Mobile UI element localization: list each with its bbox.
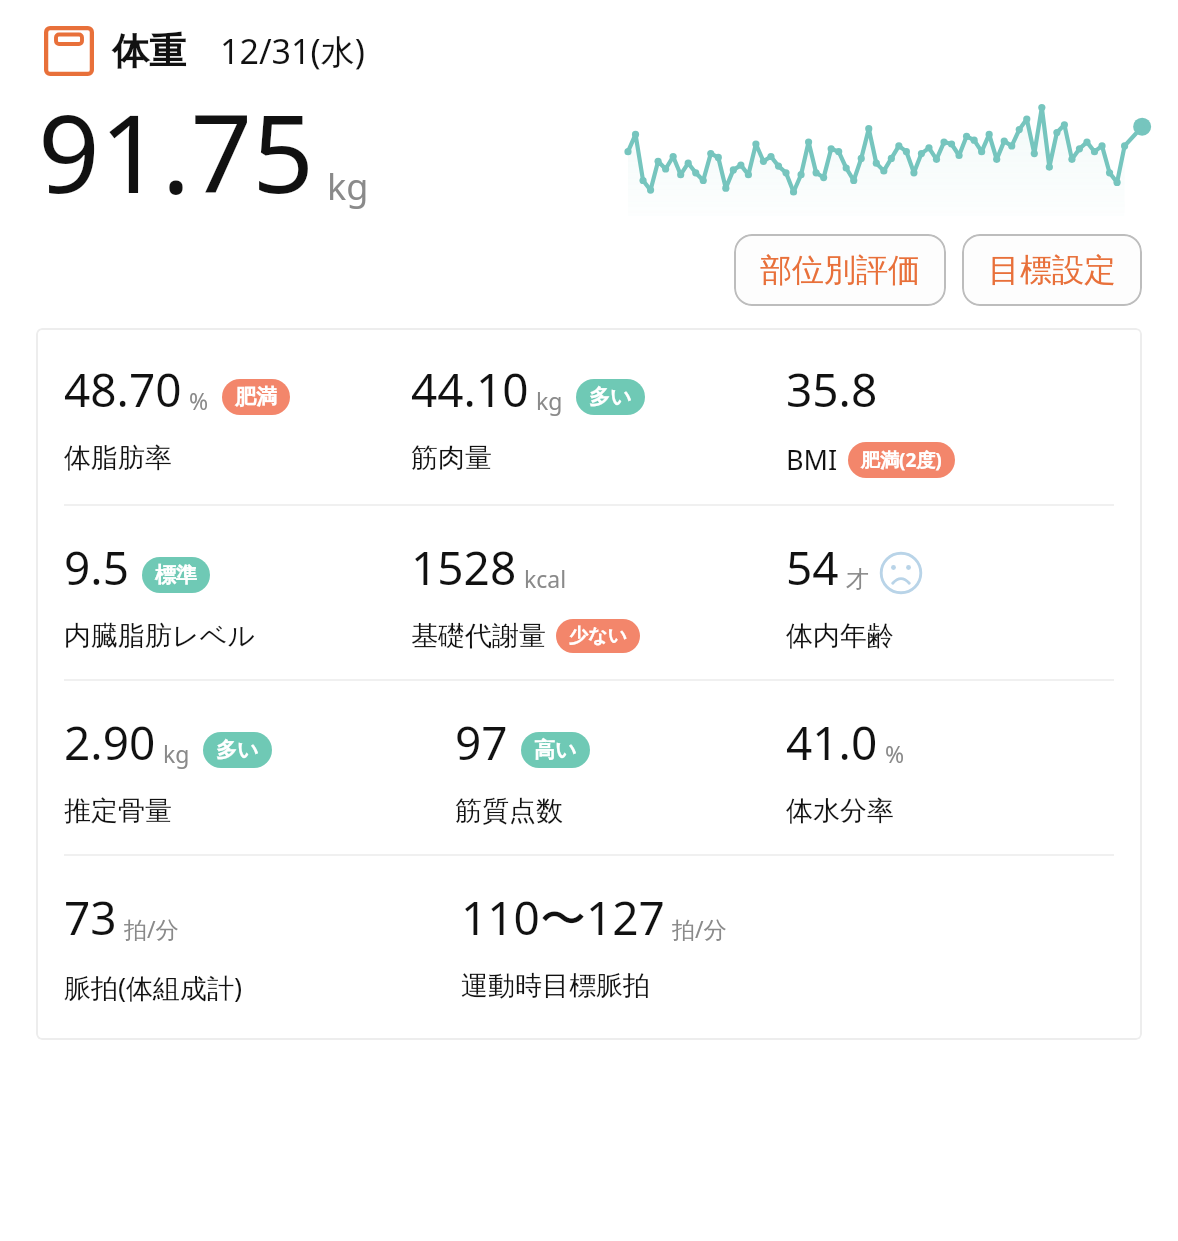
- staticText: 97: [455, 711, 508, 774]
- staticText: 12/31(水): [220, 28, 365, 74]
- staticText: kg: [536, 385, 563, 416]
- staticText: %: [885, 738, 905, 769]
- button[interactable]: 1528: [411, 536, 786, 653]
- staticText: 拍/分: [672, 913, 727, 944]
- staticText: 筋質点数: [455, 794, 563, 828]
- button[interactable]: 部位別評価: [734, 234, 946, 306]
- staticText: BMI: [786, 441, 838, 478]
- staticText: 体内年齢: [786, 619, 894, 653]
- staticText: 内臓脂肪レベル: [64, 619, 255, 653]
- staticText: 73: [64, 886, 117, 949]
- button[interactable]: 73: [64, 886, 417, 1006]
- staticText: 少ない: [569, 624, 627, 648]
- staticText: kg: [327, 162, 369, 211]
- staticText: 110〜127: [461, 886, 665, 949]
- button[interactable]: 54: [786, 536, 1142, 653]
- staticText: 部位別評価: [760, 250, 920, 290]
- button[interactable]: 9.5: [64, 536, 411, 653]
- staticText: 拍/分: [124, 913, 179, 944]
- staticText: 基礎代謝量: [411, 619, 546, 653]
- staticText: 35.8: [786, 358, 878, 421]
- staticText: 91.75: [38, 78, 315, 225]
- button[interactable]: Weight: [44, 26, 365, 76]
- button[interactable]: 48.70: [64, 358, 411, 475]
- staticText: 目標設定: [988, 250, 1116, 290]
- other: Weight: [44, 26, 94, 76]
- staticText: kcal: [524, 563, 567, 594]
- button[interactable]: 110〜127: [461, 886, 1142, 1003]
- staticText: 体重: [112, 28, 186, 75]
- button[interactable]: 目標設定: [962, 234, 1142, 306]
- staticText: 脈拍(体組成計): [64, 969, 243, 1006]
- staticText: 多い: [216, 737, 259, 763]
- other: Sad face: [879, 551, 923, 595]
- staticText: 48.70: [64, 358, 182, 421]
- staticText: %: [189, 385, 209, 416]
- staticText: 才: [846, 565, 869, 594]
- staticText: 体脂肪率: [64, 441, 172, 475]
- staticText: 推定骨量: [64, 794, 172, 828]
- button[interactable]: 97: [455, 711, 786, 828]
- staticText: 標準: [155, 562, 197, 588]
- staticText: 54: [786, 536, 839, 599]
- staticText: 41.0: [786, 711, 878, 774]
- staticText: 2.90: [64, 711, 156, 774]
- staticText: 肥満: [235, 384, 277, 410]
- staticText: 9.5: [64, 536, 129, 599]
- staticText: 体水分率: [786, 794, 894, 828]
- staticText: 44.10: [411, 358, 529, 421]
- button[interactable]: 35.8: [786, 358, 1142, 478]
- staticText: 1528: [411, 536, 517, 599]
- staticText: 筋肉量: [411, 441, 492, 475]
- staticText: 多い: [589, 384, 632, 410]
- staticText: 高い: [534, 737, 577, 763]
- staticText: 肥満(2度): [861, 447, 942, 473]
- button[interactable]: 44.10: [411, 358, 786, 475]
- staticText: 運動時目標脈拍: [461, 969, 650, 1003]
- button[interactable]: 2.90: [64, 711, 411, 828]
- button[interactable]: 41.0: [786, 711, 1142, 828]
- staticText: kg: [163, 738, 190, 769]
